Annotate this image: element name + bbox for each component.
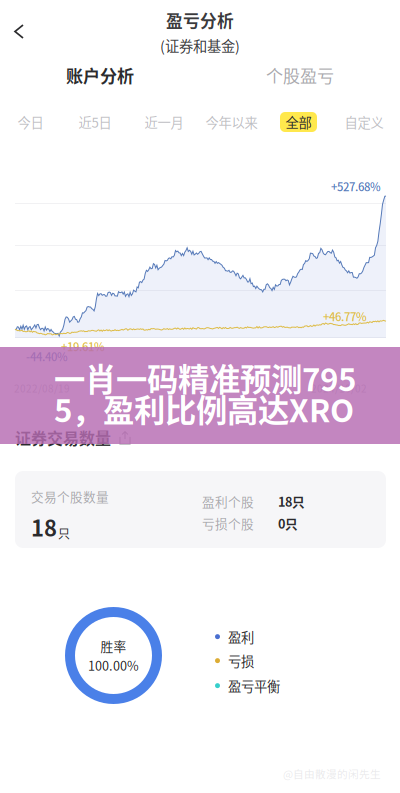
- staticText: 今日: [17, 112, 43, 132]
- button[interactable]: 今年以来: [200, 112, 263, 132]
- staticText: 0只: [278, 514, 298, 532]
- staticText: 100.00%: [88, 656, 139, 674]
- staticText: 交易个股数量: [31, 487, 109, 505]
- staticText: 账户分析: [66, 63, 134, 87]
- button[interactable]: 账户分析: [0, 62, 200, 88]
- staticText: @自由散漫的闲先生: [283, 766, 381, 781]
- staticText: 盈利个股: [202, 492, 254, 510]
- staticText: 亏损: [228, 651, 254, 670]
- staticText: 胜率: [100, 637, 126, 655]
- staticText: 18: [31, 511, 57, 543]
- staticText: +527.68%: [331, 178, 381, 194]
- staticText: +19.61%: [61, 338, 105, 354]
- staticText: 盈亏分析: [166, 8, 234, 32]
- staticText: 18只: [278, 492, 305, 510]
- staticText: 一肖一码精准预测795: [54, 355, 356, 400]
- button[interactable]: 个股盈亏: [200, 62, 400, 88]
- staticText: 全部: [285, 112, 311, 132]
- staticText: 今年以来: [205, 112, 257, 132]
- button[interactable]: 自定义: [339, 112, 389, 132]
- staticText: +46.77%: [323, 308, 367, 324]
- staticText: 近5日: [78, 112, 111, 132]
- button[interactable]: 近一月: [139, 112, 189, 132]
- staticText: (证券和基金): [160, 35, 240, 56]
- staticText: 只: [58, 524, 70, 542]
- staticText: 亏损个股: [202, 514, 254, 532]
- button[interactable]: 今日: [12, 112, 49, 132]
- staticText: 5，盈利比例高达XRO: [54, 386, 354, 431]
- button[interactable]: 分享: [117, 429, 133, 446]
- staticText: 自定义: [344, 112, 383, 132]
- button[interactable]: 返回: [4, 14, 34, 49]
- staticText: 个股盈亏: [266, 63, 334, 87]
- staticText: 近一月: [144, 112, 183, 132]
- staticText: 证券交易数量: [15, 426, 111, 449]
- staticText: 盈利: [228, 627, 254, 646]
- staticText: 盈亏平衡: [228, 676, 280, 695]
- staticText: 2022/08/19: [14, 381, 70, 395]
- button[interactable]: 全部: [280, 112, 317, 132]
- staticText: 2024/10/02: [311, 381, 367, 395]
- button[interactable]: 近5日: [73, 112, 117, 132]
- staticText: -44.40%: [26, 348, 68, 364]
